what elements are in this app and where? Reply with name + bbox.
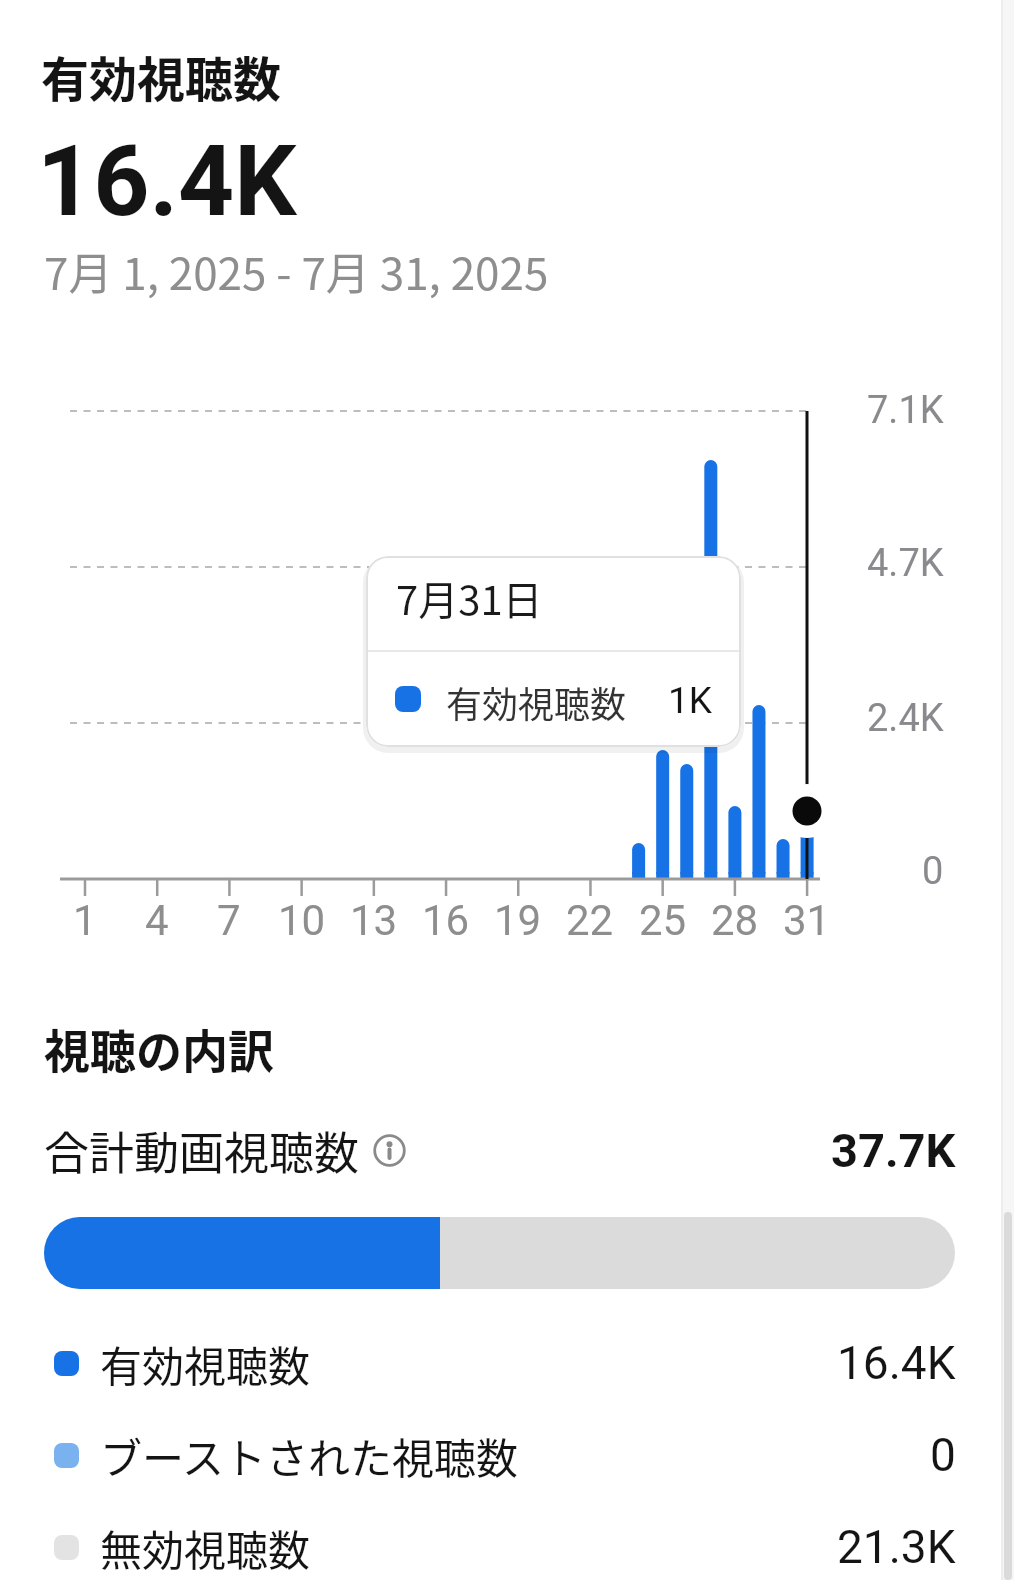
- staticText: 7: [217, 896, 241, 945]
- staticText: 合計動画視聴数: [44, 1118, 360, 1183]
- staticText: 有効視聴数: [41, 41, 282, 111]
- staticText: 有効視聴数: [100, 1333, 311, 1394]
- staticText: 0: [930, 1428, 956, 1482]
- staticText: 37.7K: [831, 1123, 956, 1178]
- staticText: 22: [566, 896, 614, 945]
- staticText: 16: [422, 896, 470, 945]
- staticText: 13: [350, 896, 398, 945]
- button[interactable]: [373, 1134, 406, 1167]
- staticText: 7.1K: [867, 388, 944, 433]
- staticText: 有効視聴数: [446, 676, 627, 728]
- staticText: 7月 1, 2025 - 7月 31, 2025: [44, 239, 549, 303]
- staticText: 1: [73, 896, 97, 945]
- staticText: 4.7K: [867, 541, 944, 586]
- staticText: 16.4K: [837, 1336, 956, 1390]
- staticText: 無効視聴数: [100, 1517, 311, 1578]
- staticText: 31: [783, 896, 831, 945]
- staticText: 21.3K: [837, 1520, 956, 1574]
- button[interactable]: ブーストされた視聴数: [0, 1419, 1014, 1491]
- staticText: 10: [278, 896, 326, 945]
- staticText: 4: [145, 896, 169, 945]
- button[interactable]: 合計動画視聴数: [0, 1114, 1014, 1186]
- button[interactable]: 無効視聴数: [0, 1511, 1014, 1580]
- staticText: ブーストされた視聴数: [100, 1425, 518, 1486]
- staticText: 25: [639, 896, 687, 945]
- staticText: 1K: [668, 679, 713, 722]
- staticText: 28: [711, 896, 759, 945]
- button[interactable]: 7月31日: [366, 556, 741, 747]
- staticText: 7月31日: [396, 569, 543, 627]
- staticText: 視聴の内訳: [44, 1015, 274, 1082]
- staticText: 2.4K: [867, 696, 944, 741]
- button[interactable]: 有効視聴数: [0, 1327, 1014, 1399]
- staticText: 0: [922, 849, 944, 894]
- staticText: 19: [494, 896, 542, 945]
- staticText: 16.4K: [37, 124, 297, 239]
